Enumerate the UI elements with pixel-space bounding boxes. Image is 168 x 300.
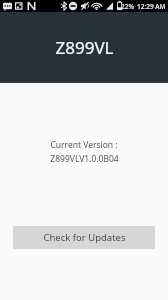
staticText: Z899VLV1.0.0B04 <box>50 153 119 165</box>
staticText: 12:29 AM <box>137 2 166 11</box>
staticText: Check for Updates <box>43 231 126 244</box>
staticText: 22% <box>121 2 134 11</box>
button[interactable]: Check for Updates <box>13 226 155 249</box>
staticText: Current Version : <box>50 139 118 151</box>
staticText: Z899VL <box>55 36 114 59</box>
